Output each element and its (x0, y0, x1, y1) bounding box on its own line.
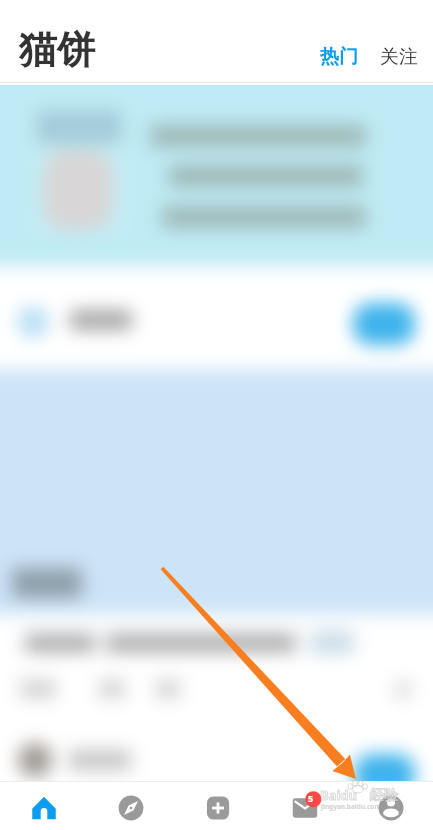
button[interactable]: Profile (347, 781, 433, 830)
button[interactable]: Messages (261, 781, 348, 830)
button[interactable]: Home (0, 781, 87, 830)
button[interactable]: 热门 (312, 38, 366, 76)
button[interactable]: 猫饼 (19, 26, 95, 74)
staticText: Baidu (320, 786, 357, 804)
button[interactable]: 关注 (372, 38, 426, 76)
staticText: jingyan.baidu.com (321, 802, 381, 811)
staticText: 5 (308, 792, 314, 804)
staticText: 关注 (380, 45, 418, 69)
staticText: Baidu (320, 786, 357, 804)
button[interactable]: Discover (87, 781, 174, 830)
staticText: 热门 (320, 45, 358, 69)
staticText: 经验 (370, 787, 398, 805)
button[interactable]: Create (174, 781, 261, 830)
staticText: 经验 (370, 787, 398, 805)
